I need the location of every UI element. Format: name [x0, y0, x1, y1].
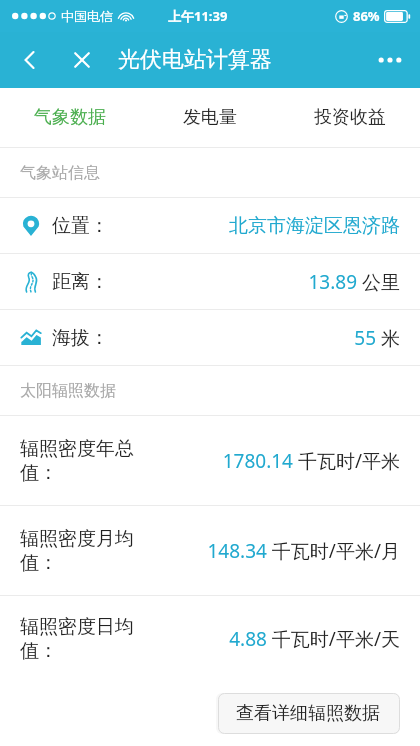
staticText: 86% [353, 7, 380, 25]
staticText: 北京市海淀区恩济路 [229, 214, 400, 238]
button[interactable]: 距离： [0, 254, 420, 309]
staticText: 148.34 千瓦时/平米/月 [207, 538, 400, 564]
staticText: 发电量 [183, 106, 237, 129]
staticText: 辐照密度日均 [20, 615, 134, 639]
staticText: 中国电信 [61, 8, 113, 24]
staticText: 投资收益 [314, 106, 386, 129]
button[interactable]: 气象数据 [0, 88, 140, 147]
button[interactable]: 返回 [10, 40, 50, 80]
staticText: 光伏电站计算器 [118, 46, 272, 74]
button[interactable]: 海拔： [0, 310, 420, 365]
staticText: 气象站信息 [20, 163, 100, 183]
staticText: 13.89 公里 [308, 269, 400, 295]
staticText: 值： [20, 639, 58, 663]
button[interactable]: 更多 [368, 38, 412, 82]
staticText: 位置： [52, 214, 109, 238]
staticText: 1780.14 千瓦时/平米 [222, 448, 400, 474]
staticText: 上午11:39 [168, 7, 228, 25]
staticText: 辐照密度年总 [20, 437, 134, 461]
button[interactable]: 辐照密度日均 [0, 596, 420, 681]
staticText: 值： [20, 461, 58, 485]
staticText: 4.88 千瓦时/平米/天 [229, 626, 400, 652]
button[interactable]: 位置： [0, 198, 420, 253]
staticText: 55 米 [354, 325, 400, 351]
staticText: 太阳辐照数据 [20, 381, 116, 401]
staticText: 距离： [52, 270, 109, 294]
staticText: 查看详细辐照数据 [236, 702, 380, 725]
staticText: 气象数据 [34, 106, 106, 129]
staticText: 值： [20, 551, 58, 575]
button[interactable]: 查看详细辐照数据 [216, 693, 400, 734]
button[interactable]: 辐照密度年总 [0, 416, 420, 505]
staticText: 辐照密度月均 [20, 527, 134, 551]
staticText: 海拔： [52, 326, 109, 350]
button[interactable]: 发电量 [140, 88, 280, 147]
button[interactable]: 投资收益 [280, 88, 420, 147]
button[interactable]: 辐照密度月均 [0, 506, 420, 595]
button[interactable]: 关闭 [62, 40, 102, 80]
